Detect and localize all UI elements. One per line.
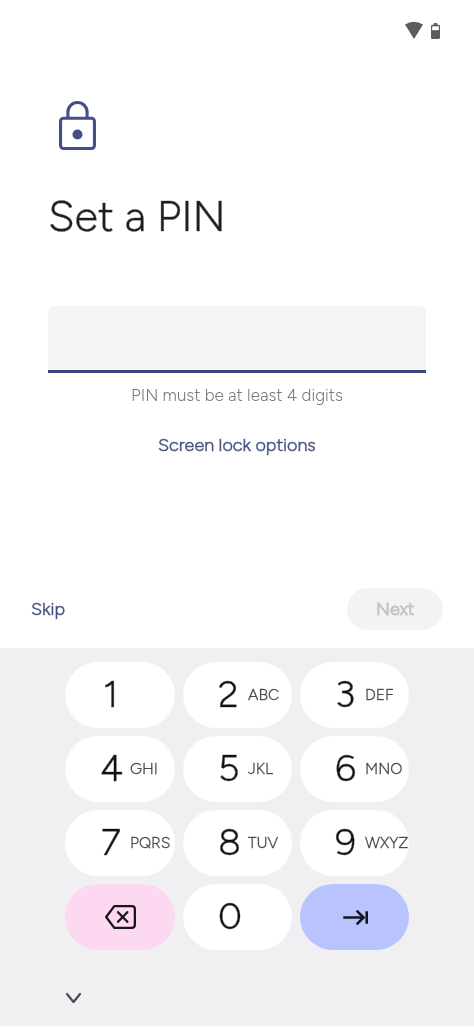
staticText: WXYZ <box>365 833 409 852</box>
button[interactable]: Skip <box>19 590 78 628</box>
staticText: 4 <box>100 745 121 790</box>
button[interactable]: 1 <box>65 662 175 728</box>
staticText: 5 <box>218 745 239 790</box>
button[interactable]: 8 <box>183 810 292 876</box>
staticText: 9 <box>335 819 356 864</box>
staticText: WXYZ <box>365 833 409 852</box>
staticText: PIN must be at least 4 digits <box>0 385 474 405</box>
button[interactable]: 5 <box>183 736 292 802</box>
staticText: 6 <box>335 745 356 790</box>
button[interactable]: Backspace <box>65 884 175 950</box>
staticText: ABC <box>248 685 280 704</box>
staticText: 7 <box>101 819 121 864</box>
staticText: 8 <box>218 819 239 864</box>
staticText: 7 <box>101 819 121 864</box>
staticText: 5 <box>218 745 239 790</box>
staticText: Set a PIN <box>48 190 226 242</box>
button[interactable]: 3 <box>300 662 409 728</box>
staticText: MNO <box>365 759 403 778</box>
staticText: JKL <box>248 759 274 778</box>
staticText: 3 <box>335 671 356 716</box>
staticText: GHI <box>130 759 158 778</box>
staticText: 9 <box>335 819 356 864</box>
button[interactable]: 6 <box>300 736 409 802</box>
button[interactable]: Screen lock options <box>148 430 326 460</box>
button[interactable]: 4 <box>65 736 175 802</box>
staticText: PQRS <box>130 833 171 852</box>
button[interactable]: 9 <box>300 810 409 876</box>
staticText: 0 <box>218 893 239 938</box>
staticText: DEF <box>365 685 394 704</box>
button[interactable]: 2 <box>183 662 292 728</box>
staticText: 6 <box>335 745 356 790</box>
staticText: 8 <box>218 819 239 864</box>
staticText: TUV <box>248 833 279 852</box>
staticText: Screen lock options <box>158 434 316 456</box>
staticText: PQRS <box>130 833 171 852</box>
staticText: Next <box>376 598 415 620</box>
staticText: 2 <box>218 671 239 716</box>
staticText: 0 <box>218 893 239 938</box>
staticText: 2 <box>218 671 239 716</box>
button[interactable]: Enter <box>300 884 409 950</box>
staticText: GHI <box>130 759 158 778</box>
staticText: Skip <box>31 598 66 620</box>
staticText: MNO <box>365 759 403 778</box>
staticText: 4 <box>100 745 121 790</box>
staticText: Set a PIN <box>48 190 226 242</box>
staticText: ABC <box>248 685 280 704</box>
staticText: Screen lock options <box>158 434 316 456</box>
staticText: JKL <box>248 759 274 778</box>
button[interactable]: Next <box>347 588 443 630</box>
staticText: 1 <box>103 671 119 716</box>
staticText: 3 <box>335 671 356 716</box>
button[interactable]: 0 <box>183 884 292 950</box>
staticText: Skip <box>31 598 66 620</box>
button[interactable]: 7 <box>65 810 175 876</box>
staticText: Next <box>376 598 415 620</box>
staticText: DEF <box>365 685 394 704</box>
staticText: 1 <box>103 671 119 716</box>
staticText: TUV <box>248 833 279 852</box>
button[interactable]: Hide keyboard <box>57 982 89 1014</box>
